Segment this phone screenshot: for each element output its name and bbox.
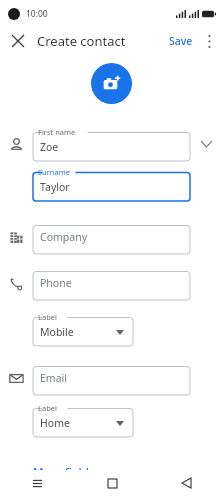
staticText: Zoe (40, 140, 59, 154)
staticText: Mobile (40, 325, 74, 339)
staticText: Create contact (37, 32, 126, 50)
button[interactable]: Email (33, 361, 190, 395)
staticText: 10:00 (26, 8, 48, 20)
staticText: Email (40, 371, 67, 385)
button[interactable]: Add photo (91, 63, 132, 104)
button[interactable]: Label (33, 312, 133, 346)
button[interactable]: Label (33, 403, 133, 437)
staticText: Label (38, 403, 57, 413)
staticText: More fields (33, 464, 95, 480)
button[interactable]: First name (33, 127, 190, 161)
staticText: Phone (40, 276, 72, 290)
button[interactable]: More fields (33, 463, 95, 481)
staticText: First name (38, 127, 76, 137)
button[interactable]: Company (33, 220, 190, 254)
button[interactable]: Expand name fields (190, 130, 223, 158)
button[interactable]: Recent apps (0, 470, 75, 496)
staticText: Company (40, 230, 87, 244)
button[interactable]: Close (6, 29, 30, 53)
staticText: Surname (38, 167, 70, 177)
button[interactable]: Save (165, 31, 197, 51)
button[interactable]: More options (198, 30, 220, 52)
button[interactable]: Home (75, 470, 149, 496)
staticText: Label (38, 312, 57, 322)
staticText: Save (169, 34, 193, 48)
button[interactable]: Surname (33, 167, 190, 201)
staticText: Home (40, 416, 70, 430)
button[interactable]: Back (149, 470, 223, 496)
button[interactable]: Phone (33, 266, 190, 300)
staticText: Taylor (40, 180, 70, 194)
